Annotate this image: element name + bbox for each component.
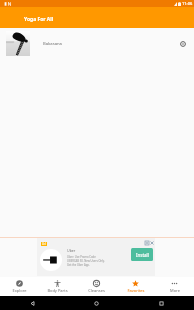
staticText: Body Parts	[47, 288, 68, 293]
button[interactable]: Body Parts	[38, 277, 77, 296]
staticText: Explore	[12, 288, 27, 293]
staticText: Bakasana	[43, 41, 62, 47]
button[interactable]: Explore	[0, 277, 38, 296]
other: Recent apps	[159, 301, 164, 306]
button[interactable]: Cleanses	[77, 277, 116, 296]
staticText: Cleanses	[88, 288, 105, 293]
staticText: Install	[136, 252, 149, 258]
staticText: Yoga For All	[24, 16, 54, 23]
staticText: Uber	[67, 248, 76, 253]
staticText: More	[170, 288, 180, 293]
staticText: Favorites	[127, 288, 145, 293]
button[interactable]: Add to favorites	[176, 37, 190, 51]
button[interactable]: More	[155, 277, 194, 296]
other: Back	[30, 301, 35, 306]
staticText: Ad	[42, 242, 46, 246]
other: Close ad	[150, 241, 154, 245]
button[interactable]: Favorites	[116, 277, 155, 296]
other: Home	[94, 301, 99, 306]
staticText: Uber: Use Promo Code UBERCAB 50. New Use…	[67, 255, 105, 267]
button[interactable]: Bakasana	[0, 29, 194, 58]
other: Ad info	[145, 241, 149, 245]
staticText: 11:06	[182, 1, 193, 6]
button[interactable]: Install	[131, 248, 153, 261]
